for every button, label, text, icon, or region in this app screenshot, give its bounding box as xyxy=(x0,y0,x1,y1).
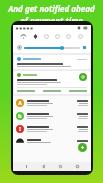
button[interactable]: Menu xyxy=(23,163,30,170)
staticText: h xyxy=(18,113,22,120)
button[interactable]: Add xyxy=(78,143,87,152)
button[interactable]: A xyxy=(13,96,91,109)
button[interactable]: Quick setting xyxy=(32,33,39,40)
staticText: I xyxy=(19,126,21,133)
button[interactable]: Quick setting xyxy=(54,33,61,40)
button[interactable]: h xyxy=(13,109,91,122)
staticText: And get notified ahead xyxy=(8,3,95,14)
staticText: of payment time xyxy=(20,15,83,26)
button[interactable] xyxy=(14,55,90,69)
button[interactable]: Back xyxy=(40,163,47,170)
button[interactable] xyxy=(14,71,90,94)
button[interactable]: Home xyxy=(57,163,64,170)
button[interactable]: Quick setting xyxy=(20,33,27,40)
button[interactable] xyxy=(13,135,91,146)
button[interactable]: I xyxy=(13,122,91,135)
staticText: A xyxy=(18,100,22,107)
button[interactable]: Quick setting xyxy=(65,33,72,40)
button[interactable]: Quick setting xyxy=(77,33,84,40)
button[interactable]: Recents xyxy=(74,163,81,170)
button[interactable]: Quick setting xyxy=(43,33,50,40)
